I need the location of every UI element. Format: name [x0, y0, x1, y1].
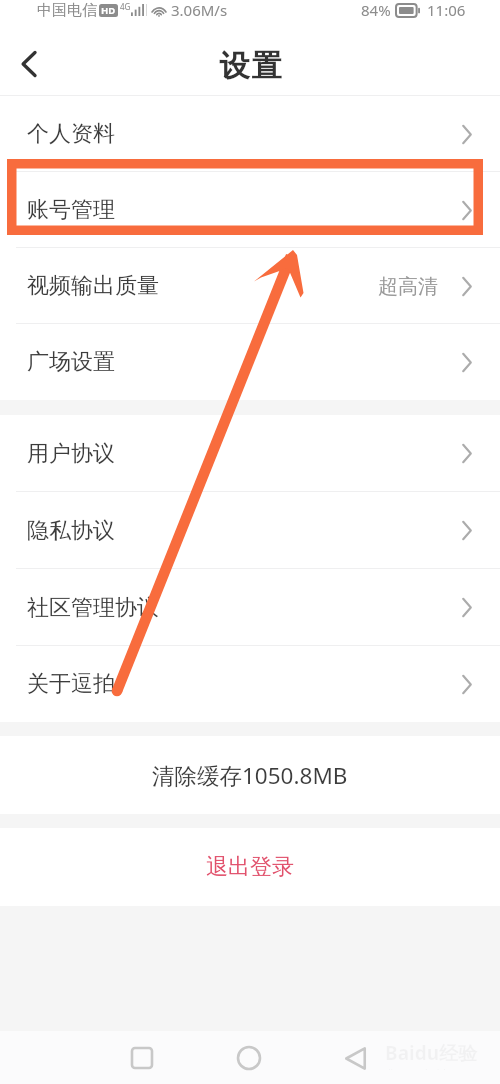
staticText: HD — [101, 4, 116, 17]
button[interactable]: 清除缓存1050.8MB — [0, 736, 500, 814]
staticText: 用户协议 — [27, 440, 115, 468]
staticText: 设置 — [218, 47, 283, 85]
button[interactable]: Home — [223, 1032, 275, 1084]
button[interactable]: 关于逗拍 — [0, 646, 500, 722]
staticText: 3.06M/s — [171, 0, 228, 20]
button[interactable]: Back — [0, 35, 58, 93]
button[interactable]: 用户协议 — [0, 415, 500, 492]
staticText: 84% — [361, 0, 391, 20]
button[interactable]: 账号管理 — [0, 172, 500, 248]
button[interactable]: 个人资料 — [0, 96, 500, 172]
staticText: 4G — [120, 1, 131, 12]
staticText: 账号管理 — [27, 196, 115, 224]
staticText: 视频输出质量 — [27, 272, 159, 300]
button[interactable]: 退出登录 — [0, 828, 500, 906]
staticText: 清除缓存1050.8MB — [152, 760, 348, 791]
staticText: 广场设置 — [27, 348, 115, 376]
staticText: 社区管理协议 — [27, 594, 159, 622]
staticText: 中国电信 — [37, 1, 97, 20]
button[interactable]: 隐私协议 — [0, 492, 500, 569]
button[interactable]: 社区管理协议 — [0, 569, 500, 646]
staticText: 隐私协议 — [27, 517, 115, 545]
staticText: 11:06 — [427, 0, 466, 20]
staticText: 个人资料 — [27, 120, 115, 148]
button[interactable]: Back — [329, 1032, 381, 1084]
staticText: 超高清 — [378, 274, 438, 299]
button[interactable]: 视频输出质量 — [0, 248, 500, 324]
staticText: Baidu经验 — [385, 1040, 478, 1066]
button[interactable]: 广场设置 — [0, 324, 500, 400]
staticText: 关于逗拍 — [27, 670, 115, 698]
button[interactable]: Recents — [116, 1032, 168, 1084]
staticText: 退出登录 — [206, 853, 294, 881]
